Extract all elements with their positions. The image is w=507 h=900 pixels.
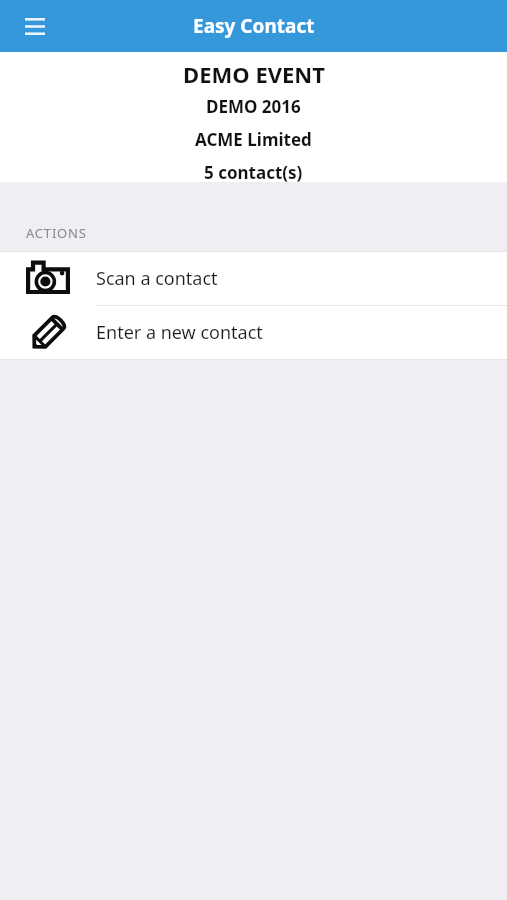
staticText: Scan a contact xyxy=(96,266,218,291)
staticText: Easy Contact xyxy=(193,13,315,39)
other: Enter a new contact xyxy=(26,312,70,354)
other: Scan a contact xyxy=(26,258,70,300)
staticText: ACME Limited xyxy=(195,128,312,151)
staticText: DEMO 2016 xyxy=(206,95,301,118)
staticText: DEMO EVENT xyxy=(183,59,325,89)
staticText: 5 contact(s) xyxy=(204,161,303,182)
button[interactable]: Scan a contact xyxy=(0,252,507,305)
button[interactable]: Open navigation menu xyxy=(12,3,58,49)
button[interactable]: Enter a new contact xyxy=(0,306,507,359)
staticText: Enter a new contact xyxy=(96,320,263,345)
staticText: ACTIONS xyxy=(26,224,87,242)
